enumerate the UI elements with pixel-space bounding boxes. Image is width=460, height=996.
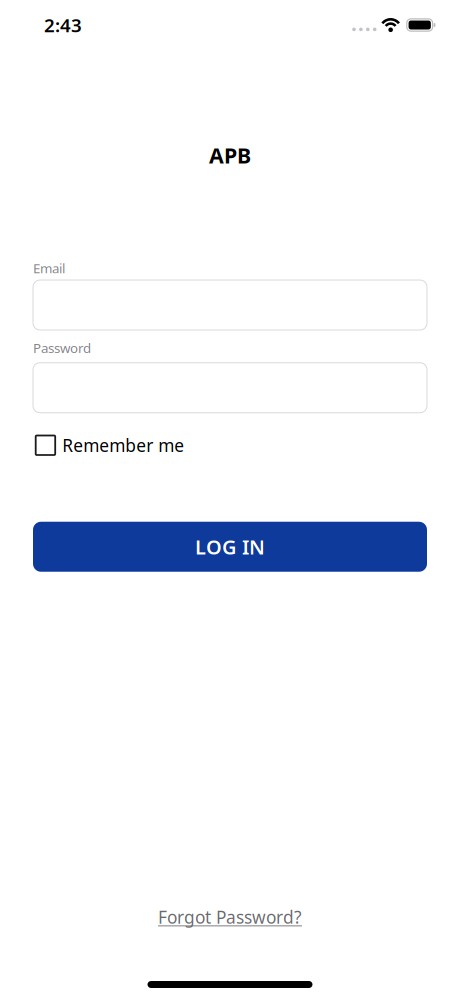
staticText: LOG IN	[195, 533, 265, 560]
button[interactable]: Forgot Password?	[158, 905, 302, 928]
button[interactable]: Remember me	[33, 434, 184, 457]
staticText: Password	[33, 339, 91, 357]
staticText: 2:43	[44, 13, 82, 37]
staticText: Forgot Password?	[158, 905, 302, 928]
staticText: Remember me	[62, 434, 184, 457]
button[interactable]: LOG IN	[33, 522, 427, 572]
staticText: APB	[209, 141, 251, 169]
staticText: Email	[33, 259, 65, 277]
